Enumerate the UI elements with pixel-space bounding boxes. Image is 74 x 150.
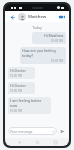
button[interactable]: Back <box>8 13 16 21</box>
staticText: Matthew <box>28 14 47 20</box>
button[interactable]: Hi Matthew <box>32 32 66 44</box>
button[interactable]: I am feeling better now <box>8 97 51 114</box>
button[interactable]: Hi Doctor <box>8 82 35 94</box>
staticText: Hi Doctor <box>10 68 27 73</box>
staticText: I am feeling better now <box>10 98 49 108</box>
staticText: How are you feeling today? <box>22 48 64 58</box>
button[interactable]: Recent apps <box>51 138 59 146</box>
button[interactable]: Hi Doctor <box>8 67 35 79</box>
staticText: Hi Matthew <box>44 33 64 38</box>
button[interactable]: How are you feeling today? <box>20 47 66 64</box>
button[interactable]: Back <box>15 138 23 146</box>
button[interactable]: Home <box>33 138 41 146</box>
staticText: 10:02 PM <box>51 39 64 43</box>
button[interactable]: Send <box>59 128 66 135</box>
button[interactable]: Matthew <box>28 14 58 20</box>
staticText: Hi Doctor <box>10 83 27 88</box>
button[interactable]: Contact avatar <box>18 13 26 21</box>
staticText: Your message <box>10 129 52 134</box>
staticText: 10:05 PM <box>10 74 23 78</box>
staticText: Today <box>32 25 42 30</box>
staticText: 10:06 PM <box>10 89 23 93</box>
staticText: 10:06 PM <box>10 109 23 113</box>
button[interactable]: Your message <box>8 127 57 135</box>
button[interactable]: Video call <box>58 13 66 21</box>
staticText: 10:02 PM <box>51 59 64 63</box>
